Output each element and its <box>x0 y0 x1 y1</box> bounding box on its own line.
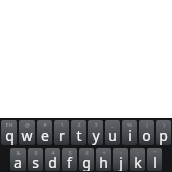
staticText: % <box>127 121 132 128</box>
staticText: @ <box>25 121 30 128</box>
staticText: o <box>142 126 151 145</box>
staticText: u <box>108 126 117 145</box>
button[interactable]: _ <box>105 120 120 145</box>
staticText: " <box>153 149 156 156</box>
staticText: p <box>159 126 168 145</box>
button[interactable]: " <box>147 148 162 171</box>
staticText: f <box>67 153 72 171</box>
staticText: r <box>59 126 65 145</box>
staticText: g <box>82 153 91 171</box>
button[interactable]: 1 <box>54 120 69 145</box>
staticText: _ <box>111 121 114 128</box>
staticText: $ <box>34 149 38 156</box>
button[interactable]: 6 <box>79 148 94 171</box>
button[interactable]: 3 <box>88 120 103 145</box>
staticText: y <box>92 126 100 145</box>
staticText: # <box>43 121 47 128</box>
staticText: s <box>32 153 39 171</box>
staticText: & <box>16 149 21 156</box>
staticText: + <box>102 149 106 156</box>
staticText: i <box>128 126 132 145</box>
button[interactable]: + <box>96 148 111 171</box>
staticText: 5 <box>68 149 72 156</box>
staticText: EN <box>5 121 13 128</box>
button[interactable]: 4 <box>45 148 60 171</box>
staticText: 4 <box>51 149 55 156</box>
staticText: e <box>41 126 49 145</box>
button[interactable]: ) <box>156 120 171 145</box>
button[interactable]: ; <box>130 148 145 171</box>
staticText: q <box>5 126 14 145</box>
staticText: : <box>120 149 122 156</box>
button[interactable]: @ <box>19 120 35 145</box>
button[interactable]: : <box>113 148 128 171</box>
staticText: 1 <box>60 121 64 128</box>
button[interactable]: % <box>122 120 137 145</box>
staticText: a <box>14 153 22 171</box>
staticText: t <box>76 126 82 145</box>
staticText: ) <box>163 121 165 128</box>
button[interactable]: # <box>37 120 52 145</box>
staticText: h <box>99 153 108 171</box>
button[interactable]: ( <box>139 120 154 145</box>
staticText: 3 <box>94 121 98 128</box>
staticText: j <box>119 153 123 171</box>
button[interactable]: & <box>10 148 26 171</box>
staticText: 2 <box>77 121 81 128</box>
staticText: ; <box>137 149 139 156</box>
button[interactable]: 2 <box>71 120 86 145</box>
staticText: k <box>134 153 142 171</box>
staticText: l <box>153 153 157 171</box>
staticText: d <box>48 153 57 171</box>
button[interactable]: $ <box>28 148 43 171</box>
button[interactable]: EN <box>1 120 17 145</box>
button[interactable]: 5 <box>62 148 77 171</box>
staticText: w <box>21 126 33 145</box>
staticText: ( <box>146 121 148 128</box>
staticText: 6 <box>85 149 89 156</box>
